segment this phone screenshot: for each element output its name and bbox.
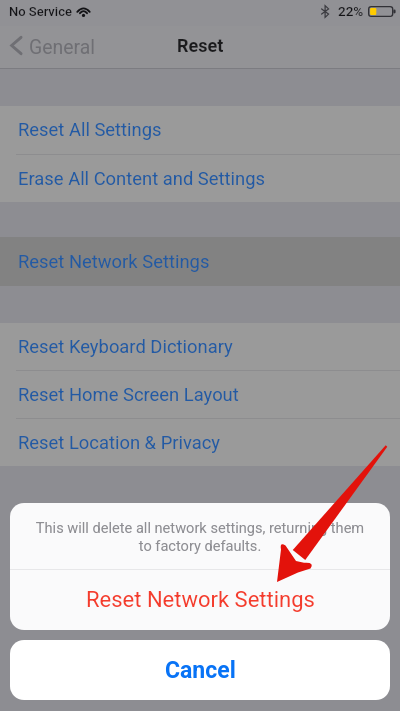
button[interactable]: Reset All Settings [0,106,400,154]
button[interactable]: Cancel [10,640,390,700]
button[interactable]: Reset Keyboard Dictionary [0,323,400,370]
staticText: Erase All Content and Settings [18,168,265,190]
button[interactable]: Reset Home Screen Layout [0,371,400,418]
button[interactable]: Back to General [7,31,98,64]
staticText: 22% [338,3,364,19]
button[interactable]: Reset Network Settings [0,237,400,286]
staticText: General [29,36,95,59]
staticText: Reset Network Settings [18,251,210,273]
staticText: Cancel [165,657,236,684]
button[interactable]: Erase All Content and Settings [0,155,400,202]
staticText: This will delete all network settings, r… [31,519,369,554]
staticText: Reset Location & Privacy [18,432,221,454]
staticText: Reset Home Screen Layout [18,384,239,406]
staticText: Reset [177,35,224,56]
staticText: Reset Keyboard Dictionary [18,336,233,358]
staticText: Reset All Settings [18,119,162,141]
staticText: No Service [9,4,72,19]
button[interactable]: Reset Location & Privacy [0,419,400,466]
button[interactable]: Reset Network Settings [10,570,390,630]
staticText: Reset Network Settings [86,587,315,613]
